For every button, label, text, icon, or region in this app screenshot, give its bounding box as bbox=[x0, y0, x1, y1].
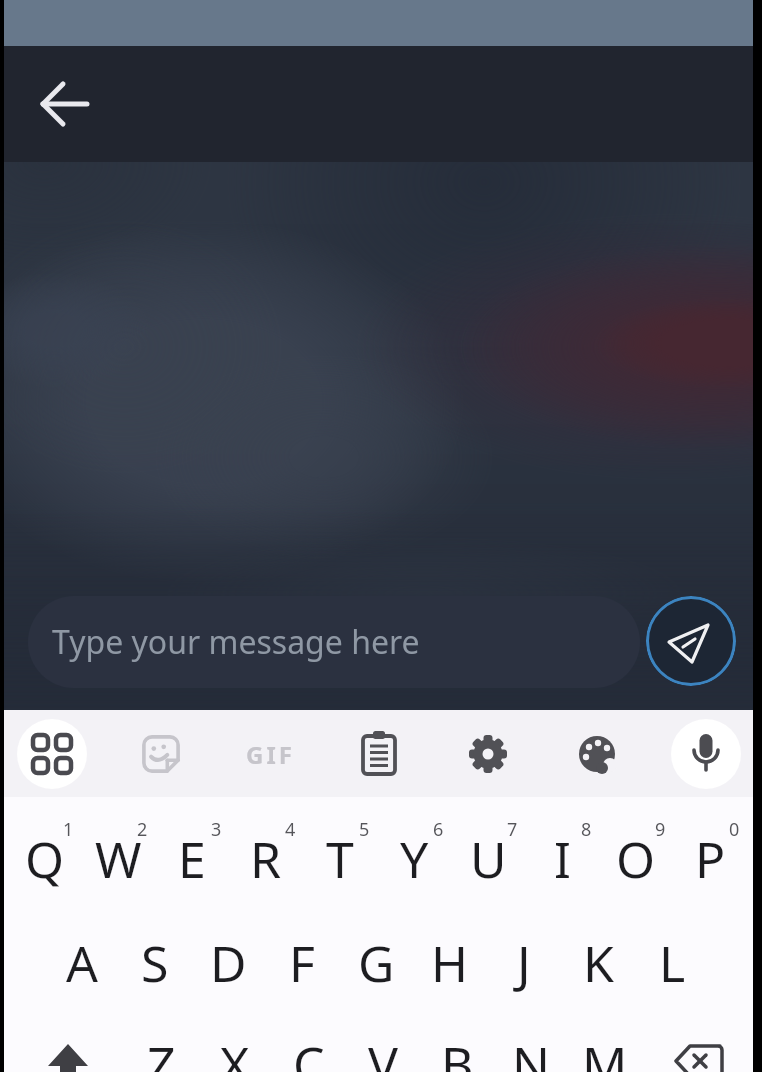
staticText: T bbox=[326, 825, 354, 893]
staticText: L bbox=[659, 929, 686, 997]
button[interactable]: W bbox=[81, 807, 155, 911]
button[interactable]: J bbox=[487, 911, 561, 1015]
staticText: 4 bbox=[285, 817, 296, 842]
button[interactable]: R bbox=[229, 807, 303, 911]
staticText: W bbox=[95, 825, 142, 893]
button[interactable]: Q bbox=[8, 807, 81, 911]
button[interactable]: A bbox=[45, 911, 118, 1015]
staticText: M bbox=[582, 1030, 628, 1072]
staticText: S bbox=[141, 929, 169, 997]
staticText: N bbox=[512, 1030, 550, 1072]
staticText: Q bbox=[25, 825, 65, 893]
button[interactable]: K bbox=[561, 911, 635, 1015]
button[interactable] bbox=[344, 719, 414, 789]
staticText: D bbox=[210, 929, 247, 997]
button[interactable]: V bbox=[346, 1012, 420, 1072]
button[interactable]: Z bbox=[124, 1012, 198, 1072]
staticText: K bbox=[583, 929, 614, 997]
button[interactable] bbox=[646, 596, 736, 686]
staticText: B bbox=[441, 1030, 474, 1072]
staticText: O bbox=[616, 825, 656, 893]
staticText: 9 bbox=[655, 817, 666, 842]
button[interactable]: N bbox=[494, 1012, 568, 1072]
staticText: GIF bbox=[246, 738, 295, 771]
button[interactable]: E bbox=[155, 807, 229, 911]
staticText: X bbox=[220, 1030, 250, 1072]
button[interactable]: T bbox=[303, 807, 377, 911]
button[interactable]: I bbox=[525, 807, 599, 911]
button[interactable]: Y bbox=[377, 807, 451, 911]
staticText: 2 bbox=[137, 817, 148, 842]
button[interactable]: H bbox=[413, 911, 487, 1015]
button[interactable]: B bbox=[420, 1012, 494, 1072]
button[interactable]: U bbox=[451, 807, 525, 911]
staticText: 8 bbox=[581, 817, 592, 842]
staticText: C bbox=[293, 1030, 325, 1072]
staticText: 7 bbox=[507, 817, 518, 842]
staticText: 0 bbox=[729, 817, 740, 842]
button[interactable]: C bbox=[272, 1012, 346, 1072]
button[interactable] bbox=[31, 70, 99, 138]
button[interactable]: F bbox=[265, 911, 339, 1015]
staticText: Y bbox=[400, 825, 429, 893]
button[interactable] bbox=[17, 719, 87, 789]
button[interactable] bbox=[126, 719, 196, 789]
button[interactable] bbox=[671, 719, 741, 789]
staticText: Z bbox=[147, 1030, 176, 1072]
staticText: R bbox=[250, 825, 282, 893]
button[interactable] bbox=[12, 1012, 124, 1072]
staticText: J bbox=[517, 929, 531, 997]
staticText: F bbox=[289, 929, 315, 997]
staticText: 6 bbox=[433, 817, 444, 842]
staticText: V bbox=[368, 1030, 398, 1072]
staticText: G bbox=[358, 929, 395, 997]
button[interactable]: D bbox=[191, 911, 265, 1015]
staticText: 3 bbox=[211, 817, 222, 842]
button[interactable]: L bbox=[635, 911, 709, 1015]
staticText: H bbox=[431, 929, 469, 997]
staticText: 1 bbox=[63, 817, 74, 842]
button[interactable]: O bbox=[599, 807, 673, 911]
button[interactable]: S bbox=[118, 911, 191, 1015]
staticText: E bbox=[178, 825, 206, 893]
staticText: A bbox=[66, 929, 98, 997]
button[interactable]: Type your message here bbox=[28, 596, 640, 688]
staticText: U bbox=[470, 825, 507, 893]
button[interactable]: GIF bbox=[235, 719, 305, 789]
button[interactable] bbox=[453, 719, 523, 789]
button[interactable]: X bbox=[198, 1012, 272, 1072]
staticText: I bbox=[554, 825, 571, 893]
button[interactable] bbox=[642, 1012, 753, 1072]
button[interactable]: M bbox=[568, 1012, 642, 1072]
staticText: Type your message here bbox=[52, 620, 420, 664]
button[interactable]: P bbox=[673, 807, 747, 911]
button[interactable] bbox=[562, 719, 632, 789]
button[interactable]: G bbox=[339, 911, 413, 1015]
staticText: P bbox=[695, 825, 726, 893]
staticText: 5 bbox=[359, 817, 370, 842]
